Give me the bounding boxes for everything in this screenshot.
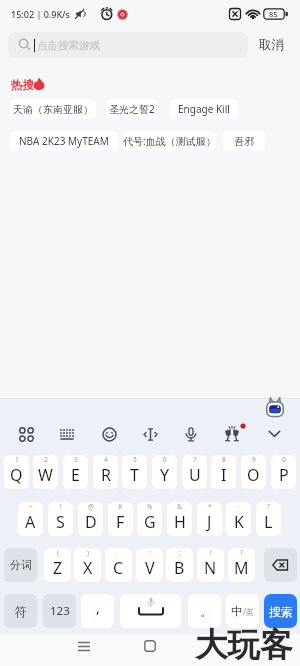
button[interactable]: 7 [182,455,207,489]
button[interactable]: 圣光之誓2 [106,99,158,119]
staticText: ( [57,548,59,557]
button[interactable]: 4 [93,455,118,489]
staticText: 大玩客 [195,625,293,666]
staticText: Engage Kill [178,102,230,116]
button[interactable] [13,421,39,447]
button[interactable]: 2 [33,455,58,489]
staticText: 符 [15,604,27,619]
button[interactable] [54,421,80,447]
staticText: W [38,464,53,486]
staticText: NBA 2K23 MyTEAM [19,134,109,148]
button[interactable]: : [136,548,163,582]
button[interactable]: @ [78,502,103,536]
staticText: 。 [200,603,213,619]
button[interactable]: 分词 [4,548,37,582]
staticText: ! [210,548,212,557]
staticText: 点击搜索游戏 [37,39,100,52]
staticText: 5 [133,455,137,464]
staticText: 热搜 [11,78,34,92]
staticText: N [204,557,217,579]
button[interactable] [219,421,245,447]
button[interactable]: & [167,502,192,536]
staticText: # [118,502,123,511]
button[interactable]: Engage Kill [170,99,238,119]
staticText: T [130,464,139,486]
button[interactable] [78,641,90,652]
button[interactable]: NBA 2K23 MyTEAM [10,131,118,151]
staticText: 0 [282,455,286,464]
staticText: 123 [50,603,70,619]
staticText: O [247,464,260,486]
staticText: 中 [231,604,243,618]
staticText: G [144,511,156,533]
button[interactable]: ! [197,548,224,582]
staticText: Y [160,464,170,486]
button[interactable]: 8 [211,455,236,489]
button[interactable]: 天谕（东南亚服） [10,99,96,119]
button[interactable]: ? [256,502,281,536]
staticText: A [25,511,36,533]
staticText: 9 [252,455,256,464]
button[interactable]: , [81,594,114,628]
staticText: % [147,502,153,511]
button[interactable] [144,640,156,652]
staticText: 85 [269,9,278,19]
button[interactable]: 5 [122,455,147,489]
button[interactable]: ( [44,548,71,582]
button[interactable]: 取消 [254,35,288,55]
staticText: E [71,464,80,486]
staticText: & [177,502,182,511]
button[interactable]: ) [74,548,101,582]
button[interactable]: · [226,502,251,536]
staticText: X [83,557,93,579]
button[interactable]: 3 [63,455,88,489]
staticText: H [174,511,186,533]
button[interactable]: 9 [241,455,266,489]
button[interactable]: ! [48,502,73,536]
button[interactable]: 123 [43,594,76,628]
staticText: 天谕（东南亚服） [13,103,93,116]
staticText: J [207,511,212,533]
button[interactable]: 代号:血战（测试服） [123,131,216,151]
button[interactable] [264,548,297,582]
staticText: 3 [74,455,78,464]
button[interactable]: 中 [226,594,259,628]
staticText: 15:02 | 0.9K/s [11,8,70,20]
staticText: L [264,511,273,533]
button[interactable]: 6 [152,455,177,489]
button[interactable]: ? [228,548,255,582]
button[interactable]: ~ [18,502,43,536]
staticText: ; [179,548,181,557]
staticText: 8 [222,455,226,464]
button[interactable]: 吾邪 [223,131,265,151]
staticText: · [238,502,240,511]
button[interactable]: % [137,502,162,536]
button[interactable] [120,594,181,628]
button[interactable]: 。 [188,594,221,628]
button[interactable] [137,421,163,447]
staticText: 圣光之誓2 [109,102,155,116]
button[interactable]: 点击搜索游戏 [8,32,248,58]
staticText: * [208,502,212,511]
staticText: 6 [163,455,167,464]
staticText: 搜索 [269,604,293,619]
button[interactable] [178,421,204,447]
staticText: 吾邪 [234,135,254,148]
button[interactable] [261,421,287,447]
staticText: 分词 [10,558,32,572]
button[interactable]: 搜索 [264,594,297,628]
button[interactable]: * [197,502,222,536]
button[interactable]: # [108,502,133,536]
button[interactable]: 1 [4,455,29,489]
button[interactable]: 符 [4,594,37,628]
button[interactable]: ; [166,548,193,582]
staticText: @ [88,502,94,511]
button[interactable]: 、 [105,548,132,582]
button[interactable] [96,421,122,447]
staticText: V [145,557,155,579]
staticText: Z [53,557,63,579]
staticText: 4 [104,455,108,464]
staticText: 代号:血战（测试服） [123,134,216,148]
button[interactable]: 0 [271,455,296,489]
staticText: F [116,511,125,533]
